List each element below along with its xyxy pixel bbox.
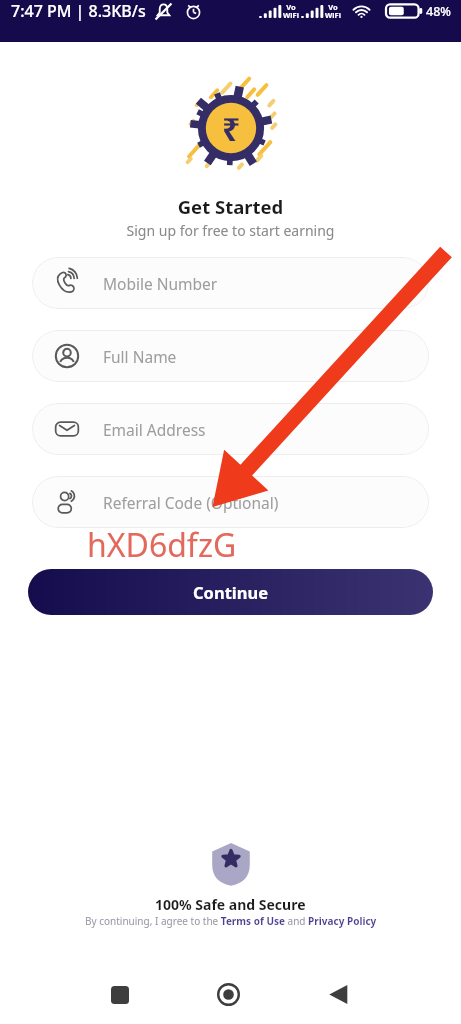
staticText: Email Address xyxy=(103,419,206,440)
staticText: Mobile Number xyxy=(103,273,218,294)
staticText: ₹ xyxy=(222,107,241,151)
staticText: hXD6dfzG xyxy=(87,523,237,567)
staticText: Vo WiFi xyxy=(283,2,299,20)
button[interactable]: Email Address xyxy=(32,403,429,455)
staticText: Sign up for free to start earning xyxy=(0,221,461,240)
button[interactable]: Full Name xyxy=(32,330,429,382)
button[interactable]: Back xyxy=(316,972,361,1017)
staticText: 7:47 PM | 8.3KB/s xyxy=(11,0,146,22)
button[interactable]: Continue xyxy=(28,569,433,615)
staticText: Get Started xyxy=(0,194,461,219)
staticText: Full Name xyxy=(103,346,177,367)
button[interactable]: Referral Code (Optional) xyxy=(32,476,429,528)
button[interactable]: Home xyxy=(206,972,251,1017)
staticText: Referral Code (Optional) xyxy=(103,492,279,513)
staticText: Continue xyxy=(193,581,269,603)
staticText: 100% Safe and Secure xyxy=(155,895,306,914)
staticText: Vo WiFi xyxy=(325,2,341,20)
button[interactable]: Mobile Number xyxy=(32,257,429,309)
staticText: 48% xyxy=(426,3,451,20)
button[interactable]: By continuing, I agree to the Terms of U… xyxy=(85,914,377,928)
button[interactable]: Recent apps xyxy=(97,972,142,1017)
